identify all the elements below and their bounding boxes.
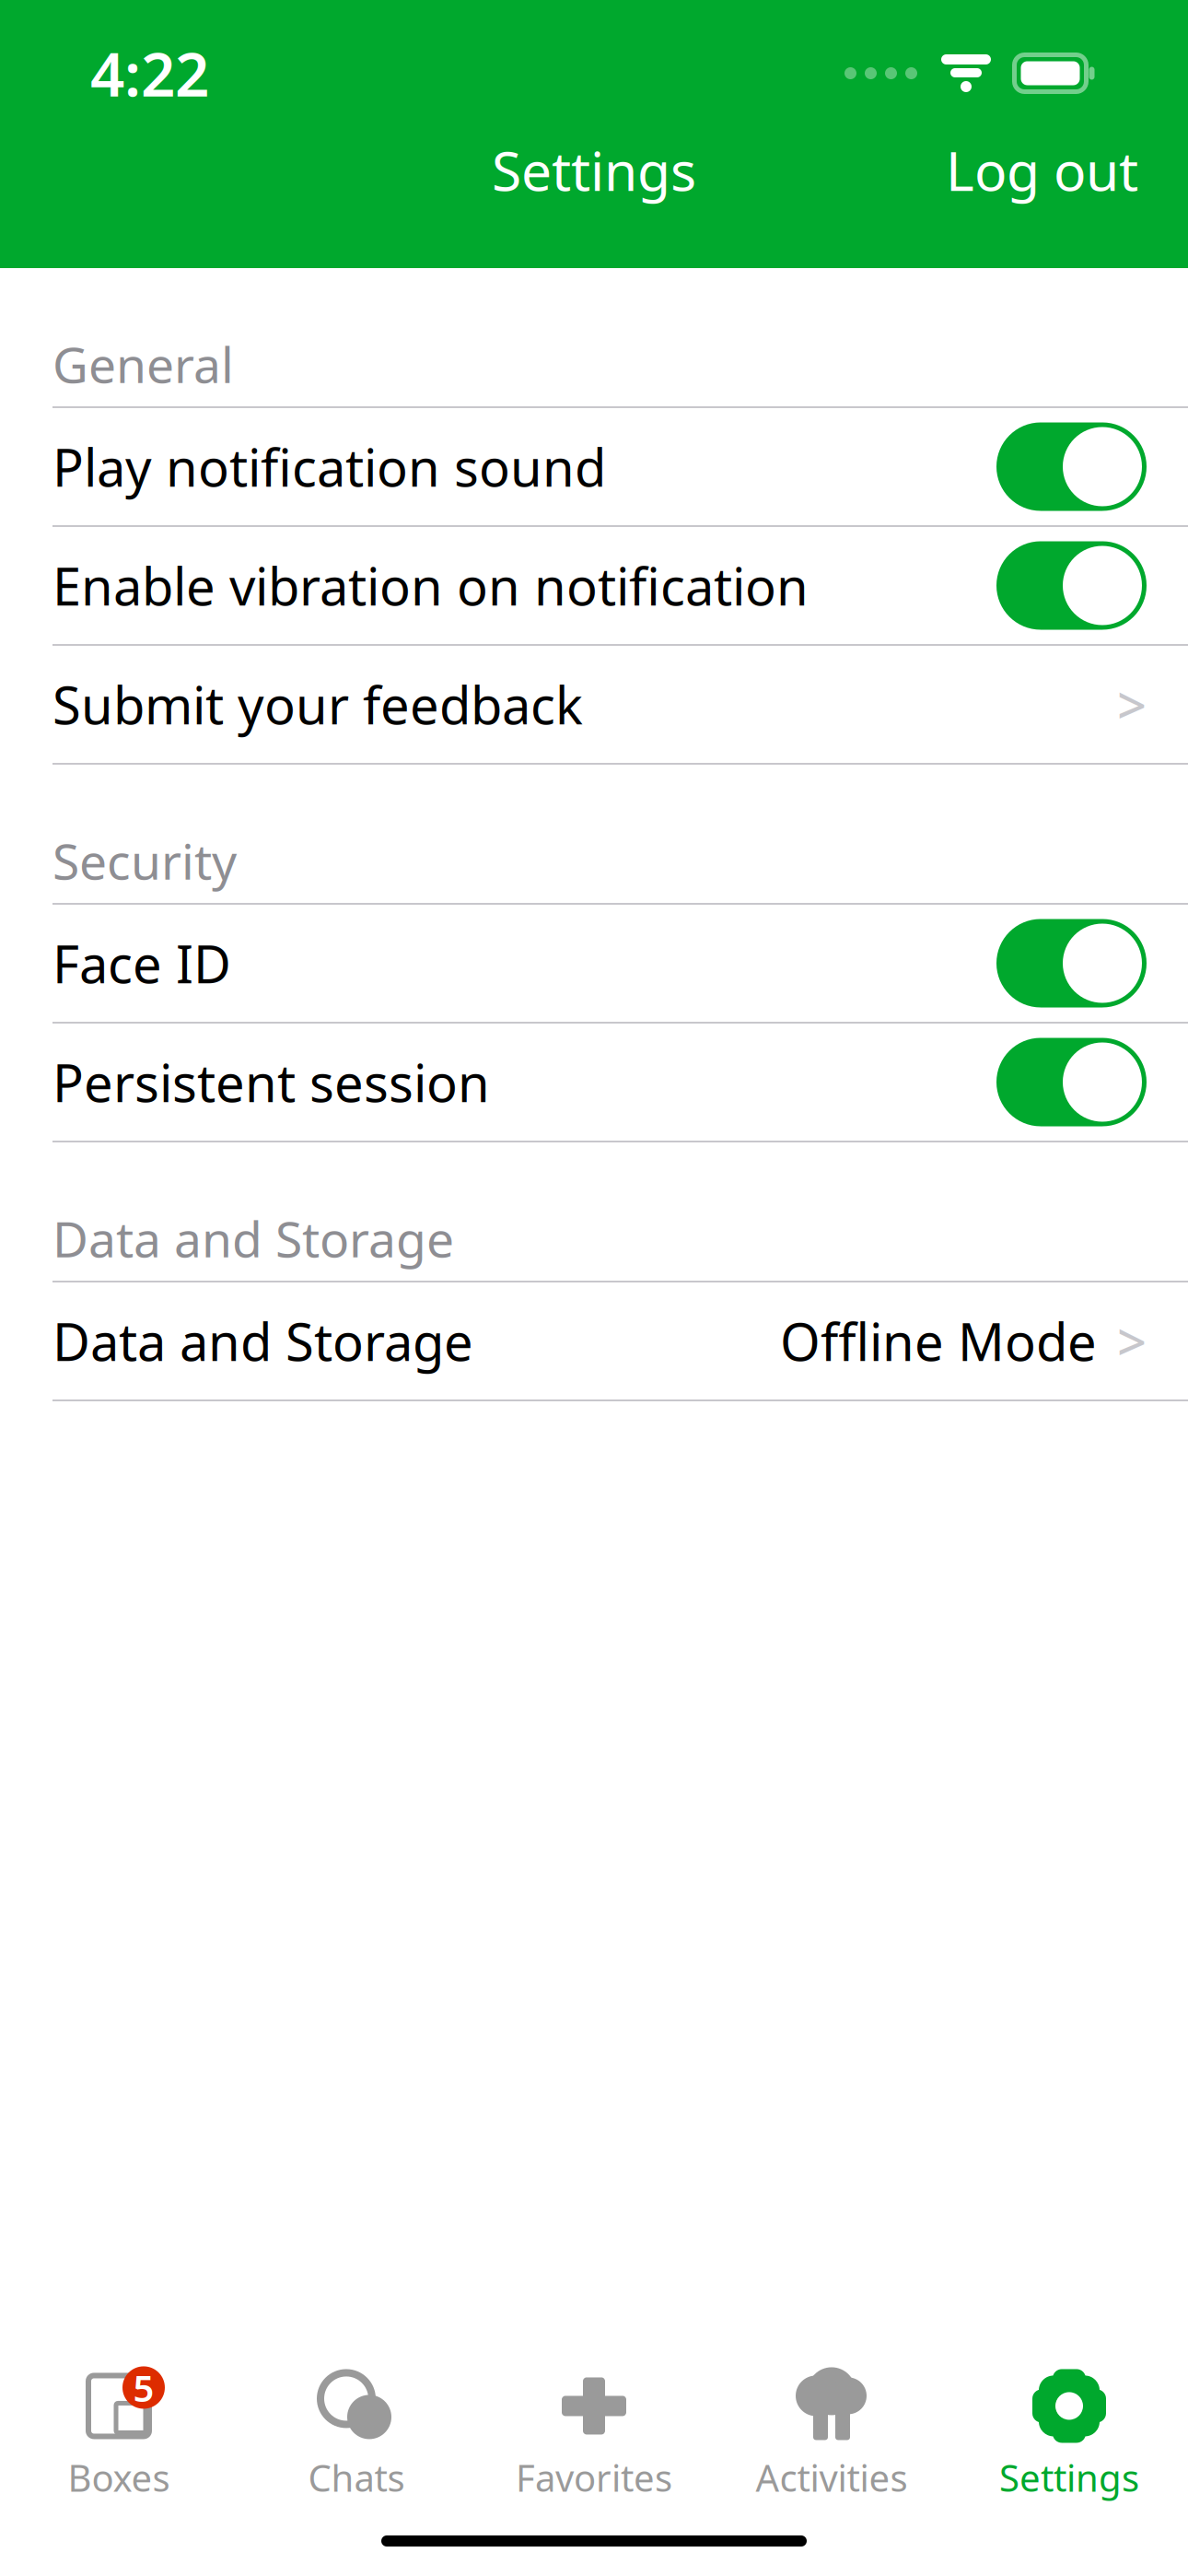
staticText: Security [52, 828, 237, 893]
button[interactable]: Submit your feedback [0, 646, 1188, 763]
staticText: > [1117, 1307, 1147, 1375]
staticText: > [1117, 670, 1147, 739]
button[interactable]: Data and Storage [0, 1282, 1188, 1399]
button[interactable]: Favorites [475, 2353, 713, 2511]
staticText: Data and Storage [52, 1307, 473, 1375]
staticText: Persistent session [52, 1048, 490, 1116]
staticText: Settings [999, 2453, 1139, 2502]
staticText: 5 [133, 2363, 154, 2412]
button[interactable]: Settings [950, 2353, 1188, 2511]
button[interactable]: Activities [713, 2353, 950, 2511]
button[interactable]: 5 [0, 2353, 238, 2511]
button[interactable]: Face ID [0, 905, 1188, 1022]
button[interactable]: Log out [929, 121, 1155, 219]
staticText: Offline Mode [780, 1307, 1097, 1375]
button[interactable]: Persistent session [0, 1024, 1188, 1141]
button[interactable]: Play notification sound [0, 408, 1188, 525]
staticText: Play notification sound [52, 432, 606, 501]
staticText: Submit your feedback [52, 670, 583, 739]
staticText: General [52, 331, 234, 397]
staticText: Enable vibration on notification [52, 551, 809, 620]
staticText: 4:22 [90, 33, 209, 113]
staticText: Chats [308, 2453, 405, 2502]
staticText: Log out [946, 134, 1138, 206]
button[interactable]: Chats [238, 2353, 475, 2511]
staticText: Data and Storage [52, 1206, 454, 1271]
staticText: Settings [492, 134, 696, 206]
staticText: Favorites [516, 2453, 672, 2502]
staticText: Face ID [52, 929, 231, 998]
staticText: Activities [756, 2453, 908, 2502]
button[interactable]: Enable vibration on notification [0, 527, 1188, 644]
staticText: Boxes [68, 2453, 170, 2502]
